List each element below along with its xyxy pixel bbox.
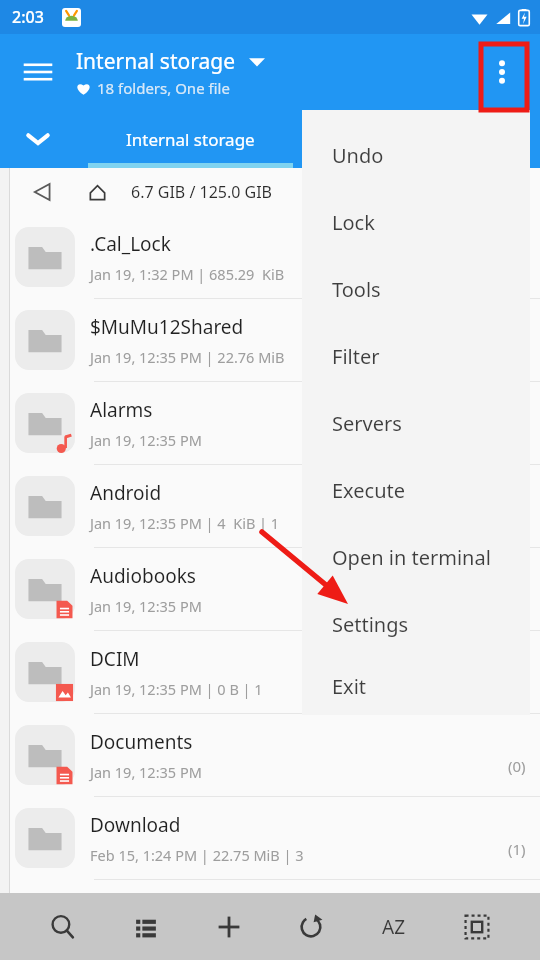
staticText: Exit <box>332 673 367 700</box>
staticText: Execute <box>332 477 406 504</box>
staticText: AZ <box>382 914 406 940</box>
staticText: Internal storage <box>76 47 235 76</box>
staticText: Servers <box>332 410 402 437</box>
staticText: 18 folders, One file <box>97 78 230 98</box>
button[interactable]: Execute <box>302 457 530 524</box>
button[interactable]: Add <box>203 901 255 953</box>
staticText: (1) <box>508 839 526 859</box>
staticText: Undo <box>332 142 384 169</box>
staticText: Jan 19, 12:35 PM <box>90 762 202 782</box>
staticText: Android <box>90 480 162 506</box>
button[interactable]: Settings <box>302 591 530 658</box>
staticText: 6.7 GIB / 125.0 GIB <box>131 181 273 203</box>
button[interactable]: Select all <box>451 901 503 953</box>
button[interactable]: DCIM <box>0 631 540 714</box>
button[interactable]: Android <box>0 465 540 548</box>
staticText: $MuMu12Shared <box>90 314 244 340</box>
staticText: DCIM <box>90 646 140 672</box>
button[interactable]: Exit <box>302 658 530 715</box>
staticText: 2:03 <box>12 6 44 28</box>
button[interactable]: .Cal_Lock <box>0 216 540 299</box>
staticText: Jan 19, 12:35 PM | 4 KiB | 1 <box>90 513 280 533</box>
staticText: Filter <box>332 343 380 370</box>
staticText: Download <box>90 812 181 838</box>
button[interactable]: Expand tabs <box>14 115 62 163</box>
staticText: Jan 19, 12:35 PM <box>90 596 202 616</box>
button[interactable]: Documents <box>0 714 540 797</box>
button[interactable]: Filter <box>302 323 530 390</box>
staticText: Jan 19, 12:35 PM | 22.76 MiB <box>90 347 285 367</box>
staticText: Internal storage <box>126 128 255 151</box>
button[interactable]: Servers <box>302 390 530 457</box>
button[interactable]: AZ <box>368 901 420 953</box>
button[interactable]: View mode <box>120 901 172 953</box>
button[interactable]: Internal storage <box>88 110 293 168</box>
button[interactable]: More options <box>478 48 526 96</box>
staticText: Jan 19, 12:35 PM <box>90 430 202 450</box>
staticText: Jan 19, 1:32 PM | 685.29 KiB <box>90 264 285 284</box>
staticText: Lock <box>332 209 375 236</box>
staticText: Tools <box>332 276 381 303</box>
button[interactable]: $MuMu12Shared <box>0 299 540 382</box>
staticText: Alarms <box>90 397 153 423</box>
button[interactable]: Alarms <box>0 382 540 465</box>
button[interactable]: Search <box>37 901 89 953</box>
button[interactable]: Refresh <box>285 901 337 953</box>
button[interactable]: Home <box>78 173 116 211</box>
button[interactable]: Lock <box>302 189 530 256</box>
button[interactable]: Open navigation drawer <box>12 46 64 98</box>
button[interactable]: Open in terminal <box>302 524 530 591</box>
staticText: Audiobooks <box>90 563 196 589</box>
staticText: Documents <box>90 729 193 755</box>
staticText: Open in terminal <box>332 544 491 571</box>
button[interactable]: Tools <box>302 256 530 323</box>
staticText: (0) <box>508 756 526 776</box>
button[interactable]: Download <box>0 797 540 880</box>
staticText: Jan 19, 12:35 PM | 0 B | 1 <box>90 679 263 699</box>
staticText: .Cal_Lock <box>90 231 171 257</box>
staticText: Settings <box>332 611 409 638</box>
button[interactable]: Internal storage <box>76 47 265 98</box>
staticText: Feb 15, 1:24 PM | 22.75 MiB | 3 <box>90 845 304 865</box>
button[interactable]: Audiobooks <box>0 548 540 631</box>
button[interactable]: Undo <box>302 122 530 189</box>
button[interactable]: Back <box>22 172 62 212</box>
